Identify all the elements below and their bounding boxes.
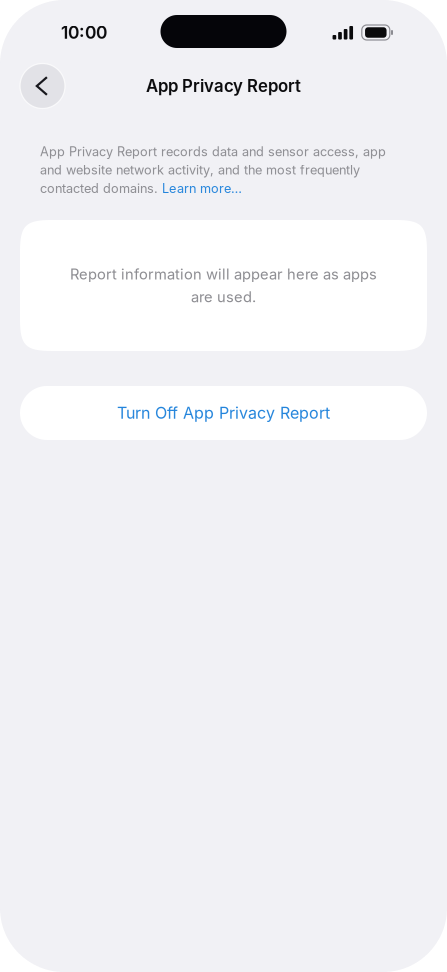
button[interactable]: Learn more… (162, 181, 242, 196)
staticText: contacted domains. (40, 181, 162, 196)
staticText: Learn more… (162, 181, 242, 196)
button[interactable]: Turn Off App Privacy Report (0, 386, 447, 440)
staticText: App Privacy Report (146, 76, 301, 96)
staticText: Turn Off App Privacy Report (117, 403, 330, 423)
staticText: and website network activity, and the mo… (40, 162, 360, 178)
staticText: Report information will appear here as a… (70, 265, 377, 283)
staticText: 10:00 (61, 22, 107, 43)
staticText: are used. (191, 288, 256, 306)
button[interactable]: Back (20, 63, 65, 108)
staticText: App Privacy Report records data and sens… (40, 144, 386, 159)
